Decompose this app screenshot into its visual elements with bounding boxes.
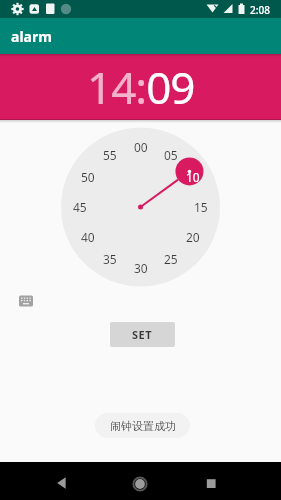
button[interactable]: [196, 468, 226, 498]
staticText: 55: [103, 147, 117, 163]
staticText: 20: [186, 229, 200, 245]
staticText: 40: [81, 229, 95, 245]
staticText: SET: [132, 327, 153, 342]
staticText: 闹钟设置成功: [110, 419, 176, 433]
button[interactable]: SET: [110, 322, 175, 347]
staticText: 05: [164, 147, 178, 163]
staticText: 25: [164, 251, 178, 267]
staticText: 2:08: [250, 3, 270, 17]
staticText: 15: [194, 199, 208, 215]
button[interactable]: [125, 468, 155, 498]
button[interactable]: [16, 292, 36, 310]
staticText: 35: [103, 251, 117, 267]
staticText: 30: [134, 260, 148, 276]
button[interactable]: [47, 468, 77, 498]
staticText: 50: [81, 169, 95, 185]
button[interactable]: alarm: [0, 18, 281, 54]
button[interactable]: 14:09: [87, 57, 195, 117]
staticText: 45: [73, 199, 87, 215]
staticText: 10: [186, 169, 200, 185]
staticText: 00: [134, 139, 148, 155]
staticText: alarm: [11, 27, 52, 46]
